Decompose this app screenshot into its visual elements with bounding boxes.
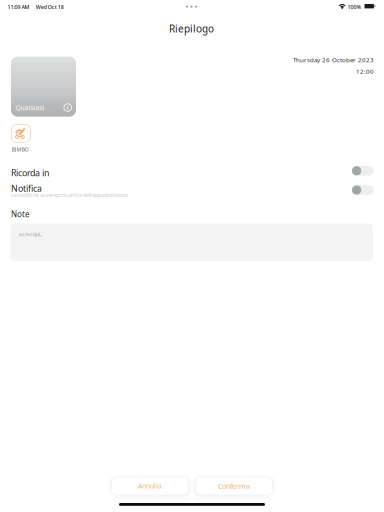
staticText: Note (11, 209, 30, 220)
staticText: Qualsiasi (15, 103, 44, 112)
staticText: Riepilogo (169, 22, 214, 35)
staticText: 11:09 AM (7, 3, 29, 10)
staticText: Thursday 26 October 2023 (293, 56, 374, 64)
button[interactable]: Annulla (111, 477, 188, 495)
button[interactable]: BIMBO (11, 124, 30, 153)
staticText: Wed Oct 18 (36, 3, 64, 10)
staticText: 100% (348, 3, 362, 10)
staticText: Le notifiche avvengono prima dell'appunt… (11, 191, 128, 198)
staticText: BIMBO (11, 146, 28, 153)
button[interactable]: Qualsiasi (11, 57, 76, 117)
staticText: Notifica (11, 182, 42, 194)
button[interactable]: Ricorda in (352, 166, 373, 176)
staticText: 12:00 (356, 67, 374, 76)
staticText: Ricorda in (11, 167, 49, 179)
staticText: scrivi qui.. (19, 230, 42, 238)
button[interactable]: Conferma (195, 477, 272, 495)
staticText: Annulla (138, 481, 162, 491)
staticText: Conferma (218, 481, 250, 491)
button[interactable]: Notifica (352, 185, 373, 195)
